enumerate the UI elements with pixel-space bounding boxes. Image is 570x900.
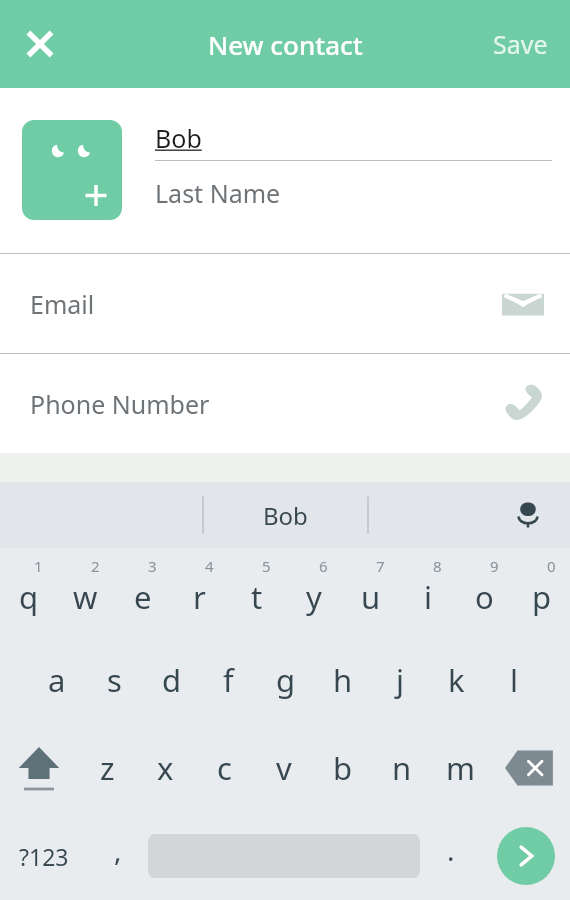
button[interactable]: 7: [342, 548, 399, 636]
staticText: z: [100, 747, 115, 789]
staticText: Phone Number: [30, 387, 210, 421]
button[interactable]: k: [428, 636, 485, 724]
button[interactable]: n: [372, 724, 431, 812]
staticText: u: [361, 576, 381, 618]
button[interactable]: Voice input: [504, 491, 552, 539]
button[interactable]: Add photo: [22, 120, 122, 220]
staticText: a: [48, 659, 66, 701]
staticText: 5: [262, 556, 271, 576]
staticText: v: [276, 747, 292, 789]
button[interactable]: Shift: [0, 724, 78, 812]
button[interactable]: Close: [14, 18, 66, 70]
button[interactable]: j: [371, 636, 428, 724]
staticText: b: [333, 747, 353, 789]
button[interactable]: Backspace: [490, 724, 570, 812]
staticText: New contact: [208, 27, 363, 62]
button[interactable]: s: [86, 636, 143, 724]
button[interactable]: .: [420, 812, 482, 900]
button[interactable]: l: [485, 636, 542, 724]
staticText: m: [446, 747, 475, 789]
staticText: w: [73, 576, 98, 618]
staticText: e: [134, 576, 152, 618]
staticText: d: [162, 659, 182, 701]
staticText: Save: [493, 27, 548, 61]
button[interactable]: b: [313, 724, 372, 812]
staticText: p: [532, 576, 552, 618]
button[interactable]: 5: [228, 548, 285, 636]
button[interactable]: Save: [471, 13, 570, 75]
staticText: r: [193, 576, 206, 618]
staticText: q: [19, 576, 39, 618]
staticText: ,: [114, 831, 122, 869]
button[interactable]: v: [254, 724, 313, 812]
staticText: j: [396, 659, 404, 701]
button[interactable]: 6: [285, 548, 342, 636]
button[interactable]: 8: [399, 548, 456, 636]
staticText: 9: [490, 556, 499, 576]
button[interactable]: g: [257, 636, 314, 724]
button[interactable]: Enter: [482, 812, 570, 900]
staticText: Bob: [155, 121, 202, 155]
staticText: c: [217, 747, 232, 789]
button[interactable]: m: [431, 724, 490, 812]
staticText: 2: [91, 556, 100, 576]
staticText: 8: [433, 556, 442, 576]
button[interactable]: ?123: [0, 812, 88, 900]
staticText: Last Name: [155, 176, 281, 210]
button[interactable]: 2: [57, 548, 114, 636]
staticText: o: [475, 576, 494, 618]
button[interactable]: Bob: [155, 116, 552, 160]
staticText: ?123: [19, 841, 69, 872]
button[interactable]: f: [200, 636, 257, 724]
staticText: Bob: [263, 499, 308, 532]
button[interactable]: a: [28, 636, 86, 724]
button[interactable]: 1: [0, 548, 57, 636]
staticText: t: [251, 576, 263, 618]
button[interactable]: x: [136, 724, 195, 812]
staticText: 4: [205, 556, 214, 576]
staticText: f: [223, 659, 234, 701]
staticText: h: [333, 659, 353, 701]
button[interactable]: 4: [171, 548, 228, 636]
staticText: Email: [30, 287, 95, 321]
button[interactable]: d: [143, 636, 200, 724]
staticText: g: [276, 659, 296, 701]
button[interactable]: c: [195, 724, 254, 812]
staticText: i: [424, 576, 432, 618]
staticText: 1: [34, 556, 43, 576]
button[interactable]: ,: [88, 812, 148, 900]
staticText: 0: [547, 556, 556, 576]
button[interactable]: 9: [456, 548, 513, 636]
button[interactable]: 3: [114, 548, 171, 636]
button[interactable]: Email: [0, 254, 570, 353]
button[interactable]: 0: [513, 548, 570, 636]
staticText: s: [107, 659, 122, 701]
staticText: .: [447, 831, 455, 869]
staticText: l: [510, 659, 518, 701]
button[interactable]: Phone Number: [0, 354, 570, 453]
staticText: n: [392, 747, 412, 789]
staticText: k: [448, 659, 465, 701]
staticText: x: [157, 747, 174, 789]
button[interactable]: z: [78, 724, 136, 812]
staticText: y: [306, 576, 322, 618]
button[interactable]: Bob: [203, 482, 368, 548]
button[interactable]: h: [314, 636, 371, 724]
staticText: 6: [319, 556, 328, 576]
staticText: 3: [148, 556, 157, 576]
button[interactable]: Last Name: [155, 161, 552, 225]
staticText: 7: [376, 556, 385, 576]
